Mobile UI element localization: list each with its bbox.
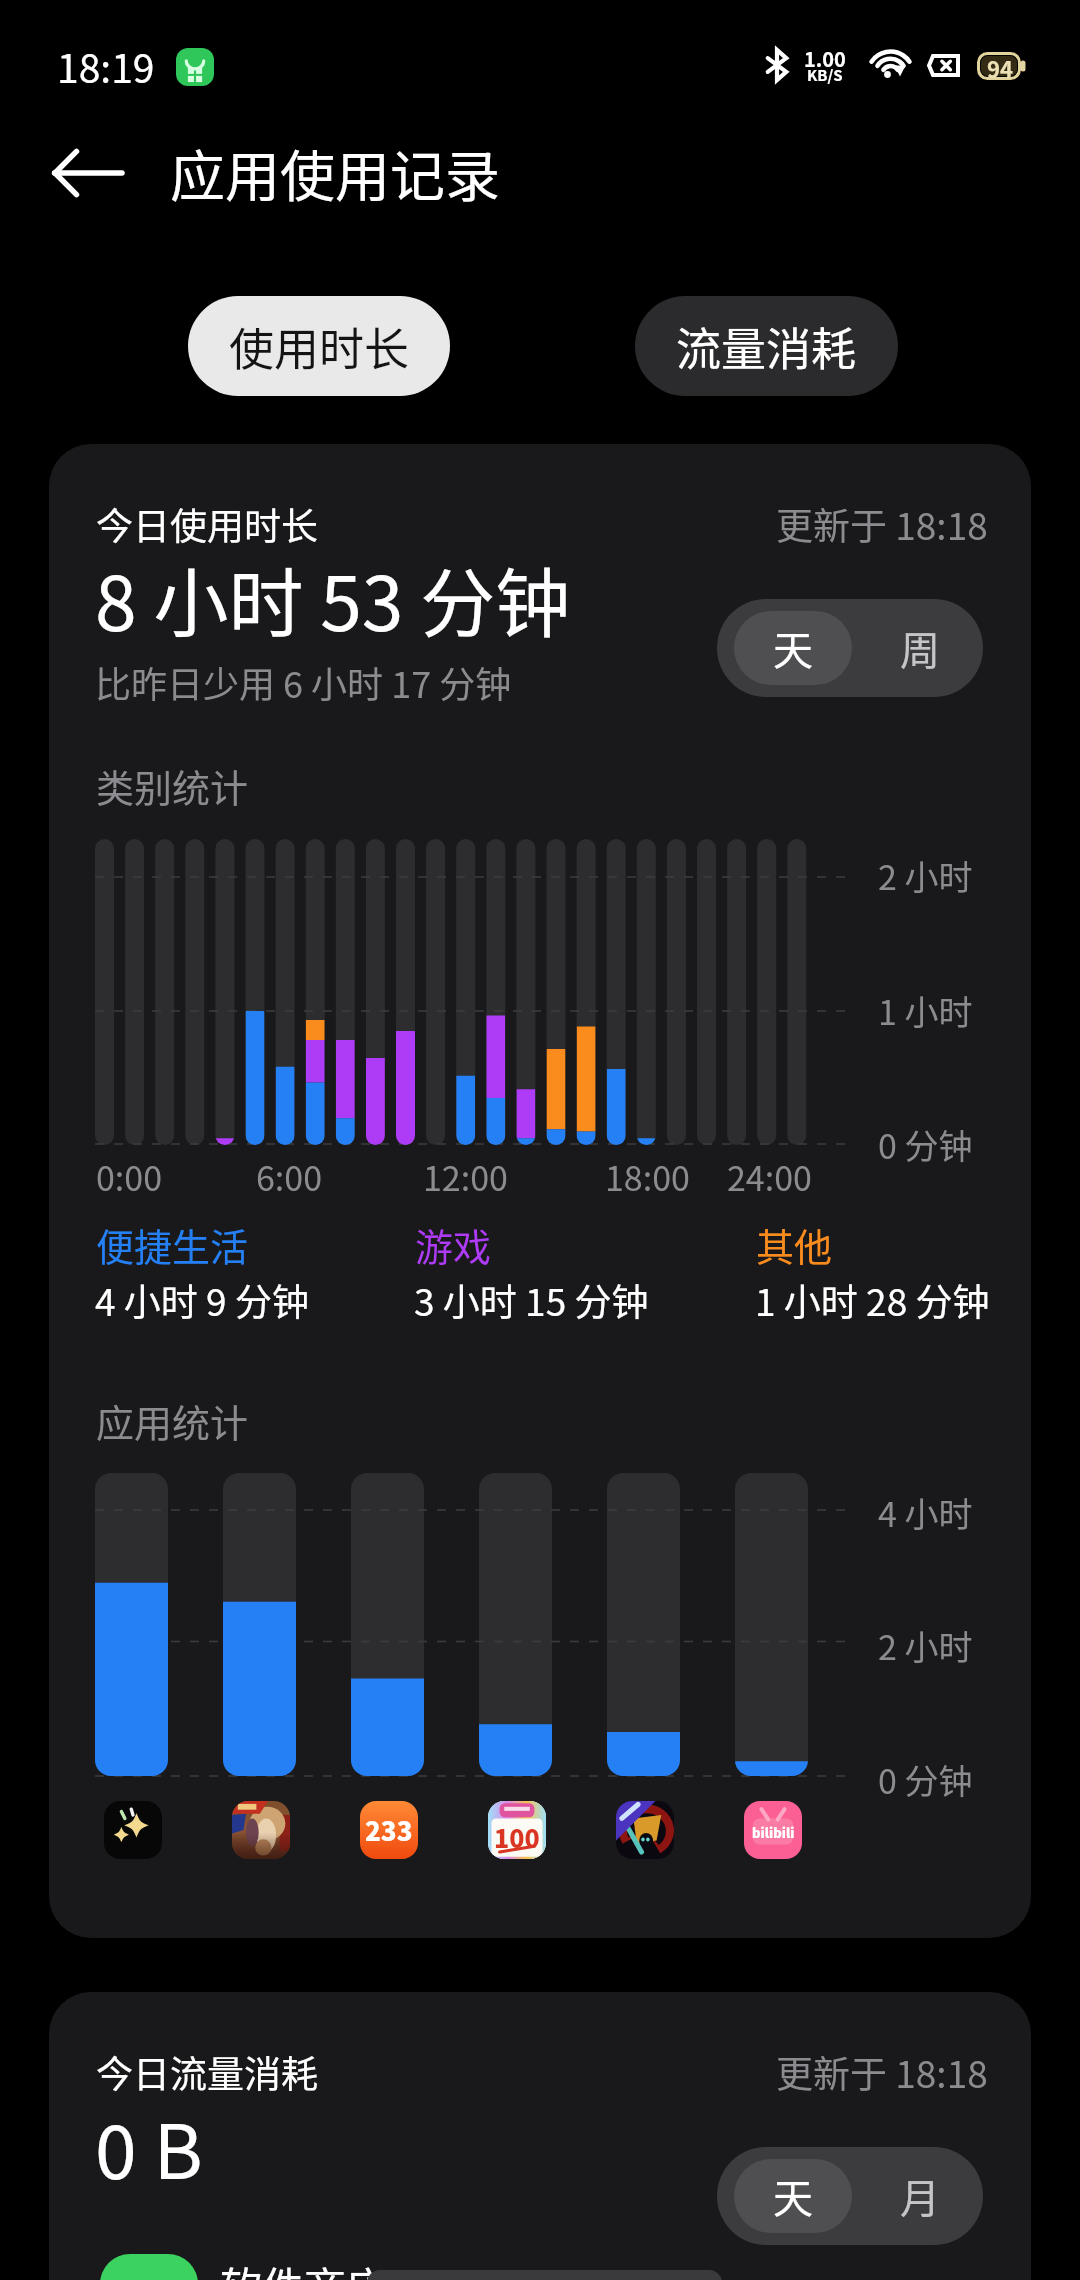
staticText: 233 [365,1811,413,1849]
staticText: 0 分钟 [878,1755,973,1804]
button[interactable]: M [100,2254,1031,2280]
staticText: 1 小时 28 分钟 [755,1273,990,1327]
staticText: 应用使用记录 [170,132,501,212]
staticText: 使用时长 [229,314,410,379]
button[interactable]: 作业帮 [488,1801,546,1859]
button[interactable]: 天 [734,611,852,685]
staticText: 今日使用时长 [96,497,318,551]
staticText: 12:00 [423,1152,508,1201]
staticText: 0 分钟 [878,1120,973,1169]
staticText: 其他 [756,1217,833,1272]
button[interactable]: 流量消耗 [635,296,898,396]
staticText: 18:19 [57,38,155,94]
staticText: 更新于 18:18 [776,497,988,551]
staticText: 2 小时 [878,851,973,900]
staticText: 6:00 [256,1152,323,1201]
staticText: 3 小时 15 分钟 [414,1273,649,1327]
staticText: 8 小时 53 分钟 [95,544,571,653]
staticText: 应用统计 [96,1393,249,1448]
staticText: 更新于 18:18 [776,2045,988,2099]
button[interactable]: Back [37,123,137,223]
staticText: 软件商店 [220,2254,389,2280]
staticText: 类别统计 [96,758,249,813]
button[interactable]: 自动清理 [104,1801,162,1859]
staticText: 24:00 [727,1152,812,1201]
staticText: 比昨日少用 6 小时 17 分钟 [95,656,512,708]
staticText: 4 小时 [878,1488,973,1537]
staticText: 0 B [95,2092,203,2201]
staticText: 天 [773,2167,813,2225]
staticText: 月 [900,2167,940,2225]
button[interactable]: 哔哩哔哩 [744,1801,802,1859]
staticText: 1 小时 [878,986,973,1035]
staticText: 游戏 [415,1217,492,1272]
staticText: 0:00 [96,1152,163,1201]
staticText: 18:00 [605,1152,690,1201]
staticText: 周 [900,619,940,677]
button[interactable]: 月 [857,2147,983,2245]
staticText: 4 小时 9 分钟 [95,1273,309,1327]
staticText: 天 [773,619,813,677]
button[interactable]: 使用时长 [188,296,450,396]
button[interactable]: 超合成 [616,1801,674,1859]
staticText: bilibili [752,1823,795,1842]
staticText: 流量消耗 [676,314,857,379]
button[interactable]: 王者荣耀 [232,1801,290,1859]
staticText: 94 [987,52,1013,80]
button[interactable]: 周 [857,599,983,697]
button[interactable]: 233乐园 [360,1801,418,1859]
staticText: 2 小时 [878,1621,973,1670]
staticText: 便捷生活 [96,1217,249,1272]
staticText: 1.00 [804,44,846,73]
staticText: 100 [494,1819,540,1855]
staticText: 今日流量消耗 [96,2045,318,2099]
button[interactable]: 天 [734,2159,852,2233]
staticText: KB/S [807,64,843,86]
